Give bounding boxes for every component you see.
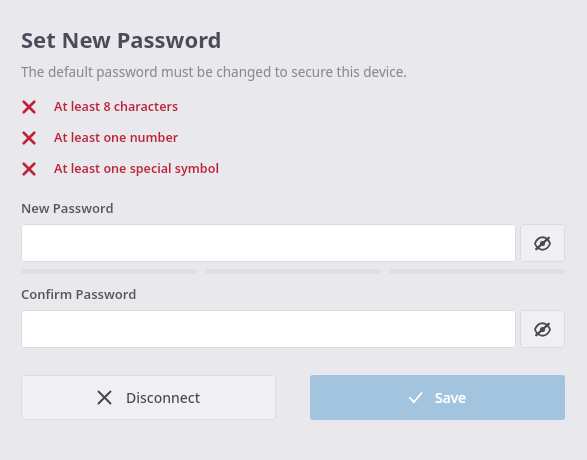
staticText: At least one special symbol	[54, 160, 219, 177]
staticText: At least 8 characters	[54, 98, 179, 115]
button[interactable]: Show password	[520, 224, 565, 262]
button[interactable]: Disconnect	[21, 375, 276, 420]
button[interactable]: Save	[310, 375, 565, 420]
staticText: The default password must be changed to …	[21, 63, 407, 81]
staticText: Disconnect	[126, 388, 201, 407]
staticText: At least one number	[54, 129, 179, 146]
staticText: Set New Password	[21, 24, 222, 54]
staticText: New Password	[21, 199, 114, 217]
button[interactable]	[21, 224, 516, 262]
staticText: Confirm Password	[21, 285, 137, 303]
button[interactable]	[21, 310, 516, 348]
staticText: Save	[435, 388, 467, 407]
button[interactable]: Show password	[520, 310, 565, 348]
